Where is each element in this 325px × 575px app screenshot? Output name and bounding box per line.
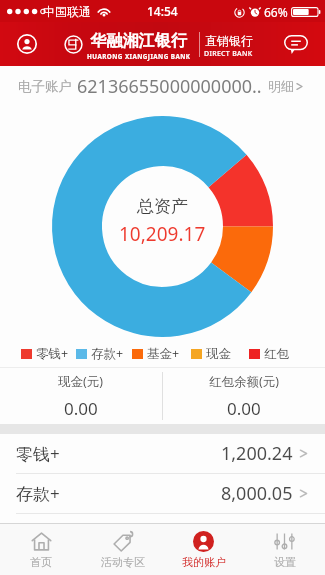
staticText: 62136655000000000.. xyxy=(77,74,262,99)
staticText: 现金 xyxy=(206,346,231,362)
staticText: 存款+ xyxy=(16,482,60,505)
staticText: 存款+ xyxy=(91,345,124,362)
staticText: 设置 xyxy=(274,555,296,569)
button[interactable]: 首页 xyxy=(0,524,82,575)
button[interactable]: 零钱+ xyxy=(0,434,325,473)
staticText: 红包余额(元) xyxy=(209,373,280,390)
button[interactable]: 活动专区 xyxy=(82,524,163,575)
staticText: 明细 xyxy=(268,78,294,94)
button[interactable]: Messages xyxy=(284,35,308,54)
staticText: HUARONG XIANGJIANG BANK xyxy=(87,52,191,61)
button[interactable]: 现金(元) xyxy=(0,368,162,424)
staticText: 零钱+ xyxy=(36,345,69,362)
button[interactable]: 我的账户 xyxy=(163,524,244,575)
staticText: 我的账户 xyxy=(182,555,226,569)
button[interactable]: 设置 xyxy=(244,524,325,575)
staticText: 0.00 xyxy=(64,397,98,420)
staticText: 零钱+ xyxy=(16,442,60,465)
staticText: 8,000.05 xyxy=(221,481,293,506)
button[interactable]: Profile xyxy=(17,34,37,54)
staticText: 现金(元) xyxy=(58,373,104,390)
staticText: 直销银行 xyxy=(205,33,253,48)
staticText: 电子账户 xyxy=(18,78,72,95)
staticText: 1,200.24 xyxy=(221,441,293,466)
staticText: 14:54 xyxy=(147,3,178,19)
button[interactable]: 存款+ xyxy=(0,474,325,513)
staticText: 首页 xyxy=(30,555,52,569)
staticText: 基金+ xyxy=(147,345,180,362)
staticText: 活动专区 xyxy=(101,555,145,569)
staticText: 总资产 xyxy=(137,196,188,217)
staticText: 10,209.17 xyxy=(119,221,206,247)
button[interactable]: 红包余额(元) xyxy=(163,368,325,424)
staticText: 红包 xyxy=(264,346,289,362)
staticText: 中国联通 xyxy=(43,4,91,19)
staticText: 华融湘江银行 xyxy=(90,31,188,51)
staticText: 66% xyxy=(264,4,288,20)
button[interactable]: 电子账户 xyxy=(0,66,325,106)
staticText: DIRECT BANK xyxy=(204,49,253,59)
staticText: 0.00 xyxy=(227,397,261,420)
